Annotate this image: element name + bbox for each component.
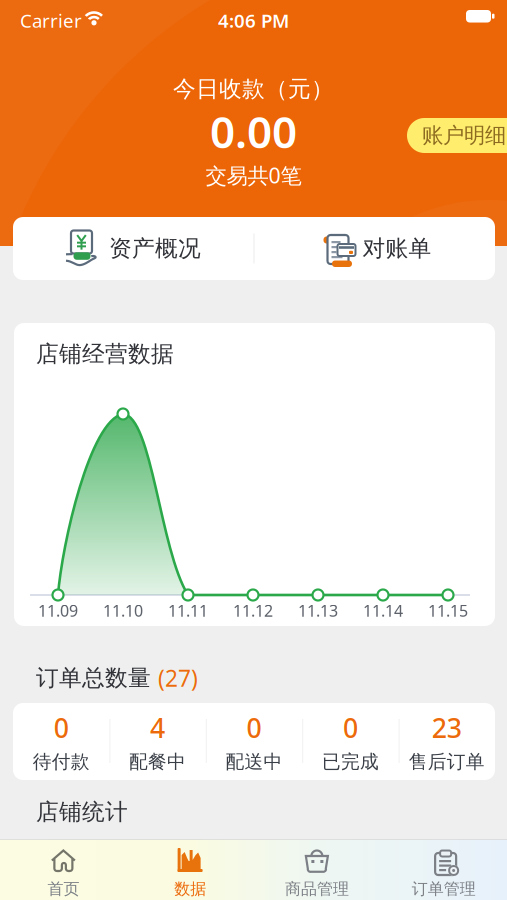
staticText: 商品管理 <box>285 879 349 899</box>
staticText: (27) <box>158 663 198 693</box>
staticText: 0 <box>343 710 358 745</box>
button[interactable]: 资产概况 <box>13 217 253 280</box>
staticText: 店铺经营数据 <box>36 340 174 368</box>
button[interactable]: 数据 <box>127 839 254 900</box>
staticText: 已完成 <box>322 750 379 773</box>
staticText: 订单管理 <box>412 879 476 899</box>
staticText: 11.10 <box>103 600 143 621</box>
staticText: 交易共0笔 <box>205 161 301 189</box>
staticText: 0 <box>246 710 261 745</box>
staticText: 待付款 <box>33 750 90 773</box>
staticText: 今日收款（元） <box>173 75 334 103</box>
staticText: 11.14 <box>363 600 403 621</box>
button[interactable]: 首页 <box>0 839 127 900</box>
button[interactable]: 账户明细 <box>407 118 507 153</box>
staticText: 11.11 <box>168 600 208 621</box>
staticText: 23 <box>432 710 462 745</box>
staticText: 数据 <box>174 879 206 899</box>
staticText: 订单总数量 <box>36 664 158 692</box>
staticText: 0.00 <box>210 102 297 160</box>
staticText: 4:06 PM <box>218 8 289 33</box>
staticText: 账户明细 <box>422 122 506 149</box>
staticText: 11.13 <box>298 600 338 621</box>
staticText: 配餐中 <box>129 750 186 773</box>
staticText: 店铺统计 <box>36 798 128 826</box>
staticText: 对账单 <box>362 235 431 262</box>
staticText: 售后订单 <box>409 750 485 773</box>
staticText: 配送中 <box>225 750 282 773</box>
staticText: 资产概况 <box>109 235 201 262</box>
staticText: 11.15 <box>428 600 468 621</box>
staticText: 11.09 <box>38 600 78 621</box>
button[interactable]: 商品管理 <box>253 839 380 900</box>
staticText: 4 <box>150 710 165 745</box>
staticText: 首页 <box>47 879 79 899</box>
staticText: Carrier <box>20 8 82 33</box>
staticText: 0 <box>54 710 69 745</box>
staticText: 11.12 <box>233 600 273 621</box>
button[interactable]: 订单管理 <box>380 839 507 900</box>
button[interactable]: 对账单 <box>254 217 494 280</box>
